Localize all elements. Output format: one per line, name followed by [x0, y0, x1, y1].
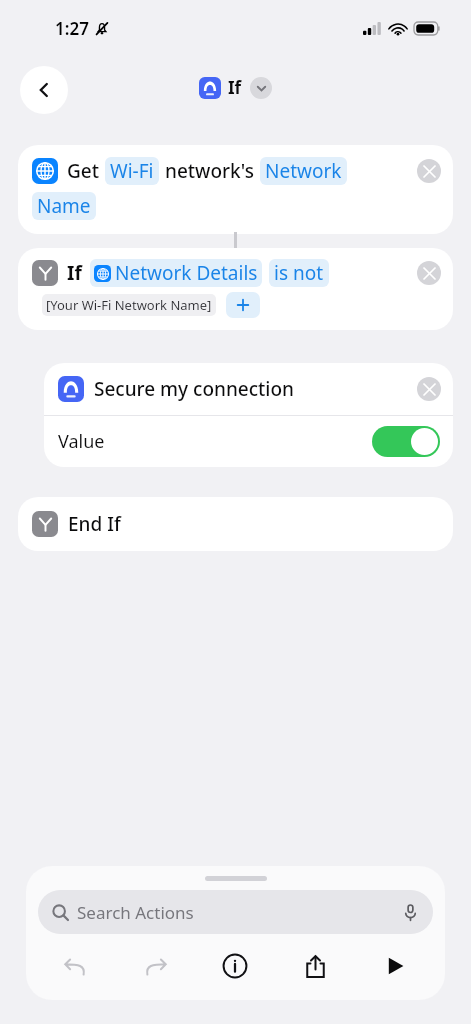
button[interactable]: Network — [260, 157, 347, 185]
button[interactable]: Search Actions — [38, 890, 433, 934]
staticText: Get — [67, 158, 99, 184]
staticText: network's — [165, 158, 254, 184]
staticText: Wi-Fi — [110, 158, 154, 184]
button[interactable]: Wi-Fi — [105, 157, 159, 185]
button[interactable]: Info — [195, 944, 275, 988]
staticText: 1:27 — [55, 17, 89, 40]
staticText: [Your Wi-Fi Network Name] — [46, 296, 212, 314]
staticText: Value — [58, 429, 105, 454]
other: Dictate — [402, 904, 419, 921]
button[interactable]: If — [18, 248, 453, 330]
button[interactable]: Name — [32, 192, 96, 220]
button[interactable]: Network Details — [90, 259, 262, 287]
staticText: Network — [265, 158, 342, 184]
button[interactable]: Redo — [115, 944, 195, 988]
staticText: If — [67, 260, 82, 286]
button[interactable]: Share — [275, 944, 355, 988]
button[interactable]: Back — [20, 66, 68, 114]
button[interactable]: Remove action — [417, 377, 441, 401]
button[interactable]: Get — [18, 145, 453, 234]
staticText: Network Details — [115, 260, 258, 286]
button[interactable]: Undo — [36, 944, 115, 988]
button[interactable]: is not — [269, 259, 329, 287]
button[interactable]: End If — [18, 497, 453, 551]
staticText: If — [228, 76, 242, 99]
staticText: Search Actions — [77, 901, 194, 924]
staticText: Name — [37, 193, 91, 219]
button[interactable]: Run — [355, 944, 435, 988]
staticText: is not — [274, 260, 324, 286]
button[interactable]: Remove action — [417, 159, 441, 183]
staticText: Secure my connection — [94, 376, 294, 402]
button[interactable]: Add — [226, 292, 260, 318]
button[interactable]: If — [199, 76, 272, 99]
other: More — [250, 77, 272, 99]
button[interactable]: Value — [44, 416, 453, 467]
staticText: End If — [68, 511, 121, 537]
button[interactable]: Secure my connection — [44, 363, 453, 415]
button[interactable]: [Your Wi-Fi Network Name] — [42, 294, 216, 316]
button[interactable]: Value toggle — [372, 426, 440, 457]
button[interactable]: Remove action — [417, 261, 441, 285]
